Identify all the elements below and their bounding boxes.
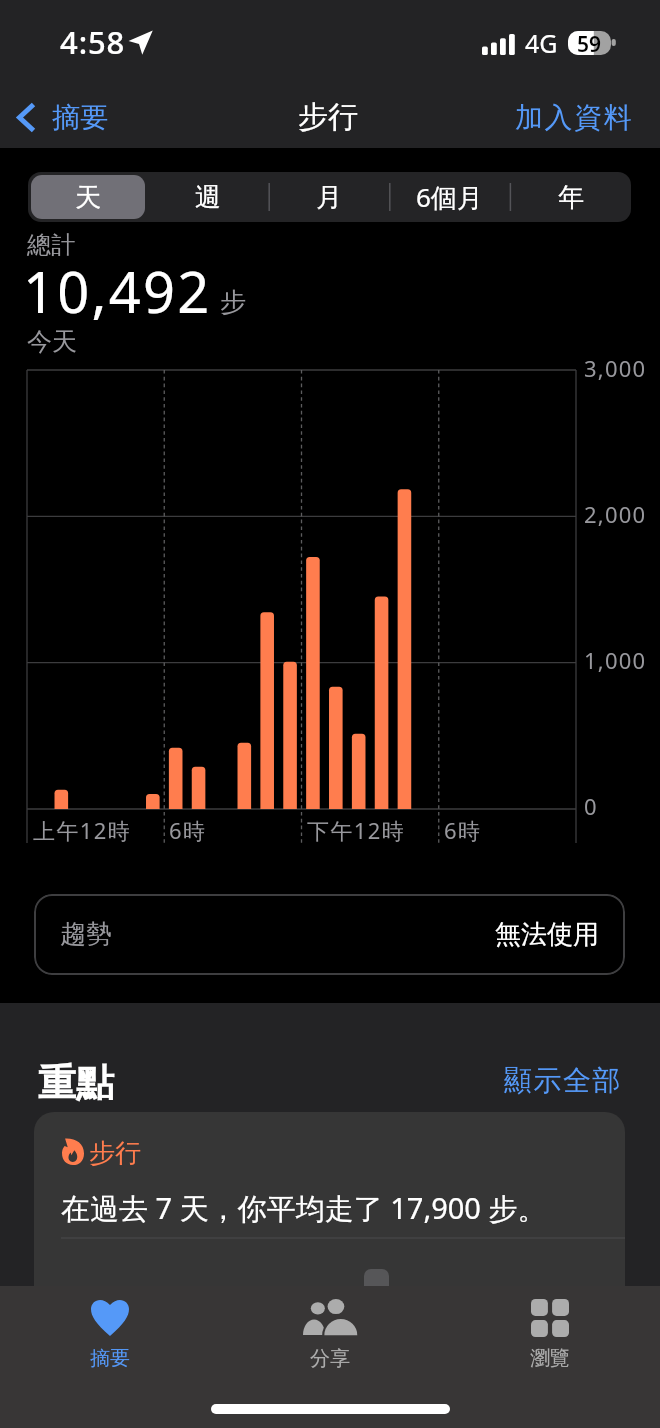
other: Sharing <box>303 1299 357 1335</box>
staticText: 10,492 <box>23 253 212 329</box>
other: Browse <box>531 1299 569 1335</box>
staticText: 2,000 <box>584 499 647 529</box>
staticText: 年 <box>558 181 584 214</box>
staticText: 月 <box>316 181 342 214</box>
button[interactable]: 6個月 <box>392 175 507 219</box>
staticText: 今天 <box>27 326 77 357</box>
button[interactable]: 週 <box>151 175 265 219</box>
other: Summary <box>91 1299 129 1336</box>
staticText: 步行 <box>89 1137 141 1170</box>
staticText: 步行 <box>298 98 358 136</box>
button[interactable]: Browse <box>440 1286 660 1371</box>
staticText: 顯示全部 <box>504 1063 622 1098</box>
staticText: 59 <box>577 30 602 54</box>
button[interactable]: 加入資料 <box>501 92 660 143</box>
staticText: 4:58 <box>60 21 126 63</box>
staticText: 趨勢 <box>60 918 112 951</box>
staticText: 天 <box>75 181 101 214</box>
button[interactable]: 摘要 <box>0 92 120 143</box>
staticText: 0 <box>584 791 598 821</box>
staticText: 摘要 <box>52 100 108 135</box>
button[interactable]: 天 <box>31 175 145 219</box>
staticText: 步 <box>220 286 246 319</box>
staticText: 摘要 <box>90 1346 130 1371</box>
staticText: 重點 <box>38 1059 114 1107</box>
button[interactable]: Summary <box>0 1286 220 1371</box>
staticText: 加入資料 <box>515 100 634 135</box>
staticText: 下午12時 <box>307 815 406 845</box>
staticText: 週 <box>195 181 221 214</box>
button[interactable]: 趨勢 <box>34 894 625 975</box>
button[interactable]: 顯示全部 <box>492 1057 648 1104</box>
staticText: 3,000 <box>584 353 647 383</box>
staticText: 總計 <box>27 230 75 260</box>
staticText: 無法使用 <box>495 918 599 951</box>
staticText: 上午12時 <box>33 815 132 845</box>
button[interactable]: Sharing <box>220 1286 440 1371</box>
staticText: 瀏覽 <box>530 1346 570 1371</box>
staticText: 在過去 7 天，你平均走了 17,900 步。 <box>61 1188 547 1228</box>
button[interactable]: 月 <box>271 175 386 219</box>
staticText: 分享 <box>310 1346 350 1371</box>
staticText: 4G <box>525 26 558 60</box>
button[interactable]: 年 <box>513 175 628 219</box>
staticText: 6時 <box>169 815 207 845</box>
staticText: 1,000 <box>584 645 647 675</box>
staticText: 6時 <box>444 815 482 845</box>
staticText: 6個月 <box>416 179 483 215</box>
button[interactable]: 步行 <box>34 1112 625 1292</box>
